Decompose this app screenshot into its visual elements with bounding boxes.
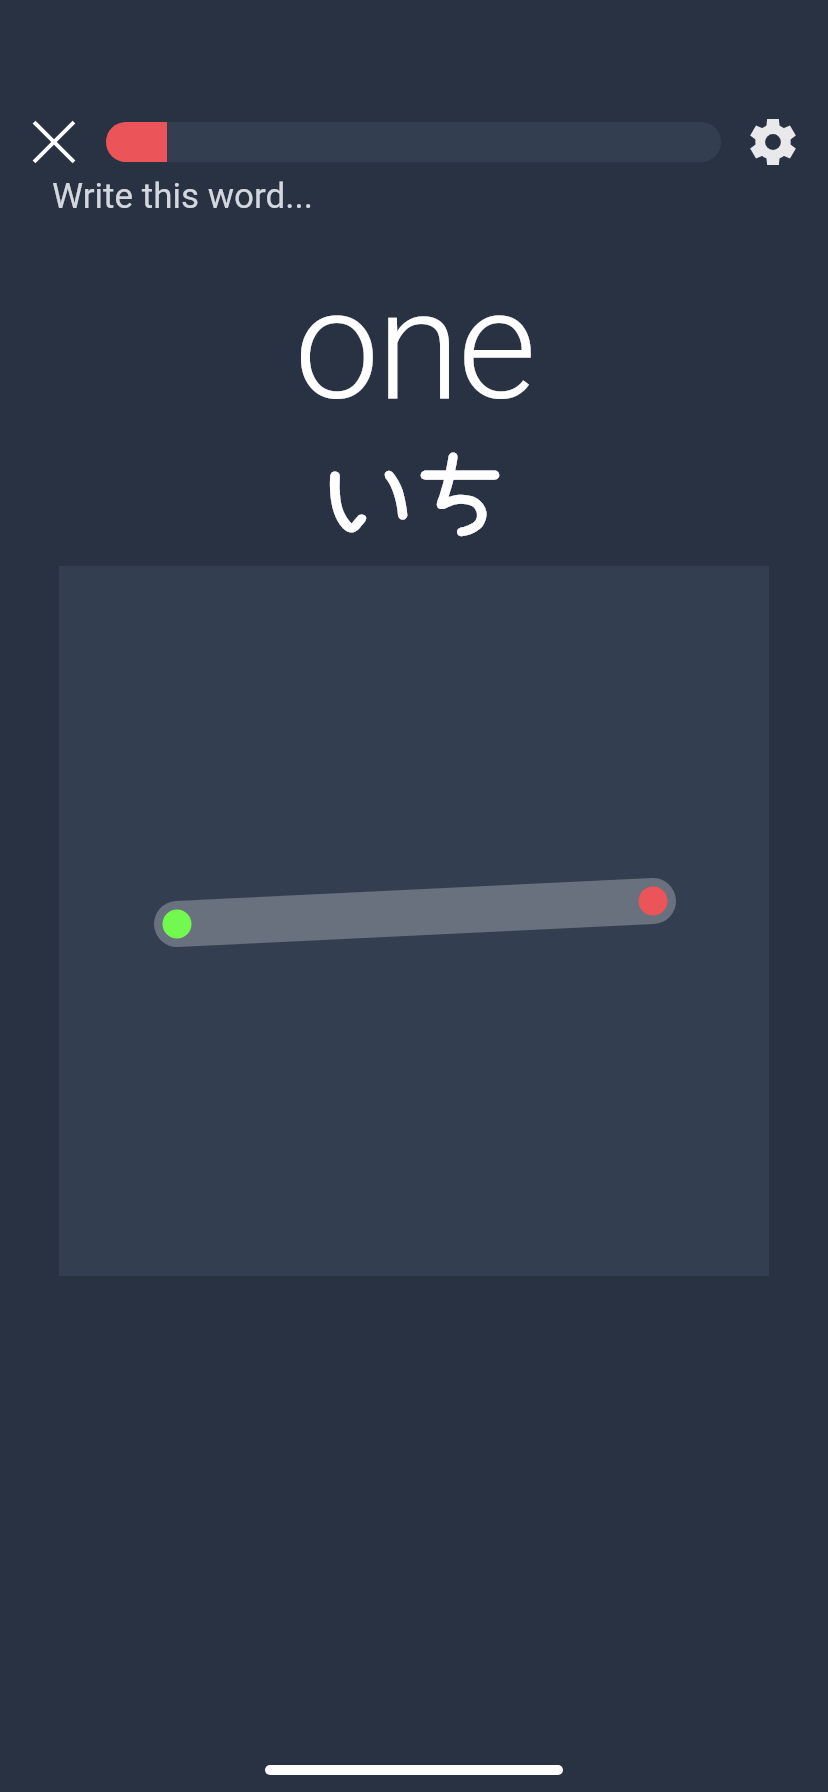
staticText: いち [0, 420, 828, 1792]
button[interactable]: Close [21, 109, 87, 175]
staticText: いち [0, 420, 828, 1792]
button[interactable]: Settings [745, 114, 801, 170]
staticText: one [0, 257, 828, 1792]
staticText: Write this word... [52, 176, 313, 217]
button[interactable]: Writing canvas [59, 566, 769, 1276]
